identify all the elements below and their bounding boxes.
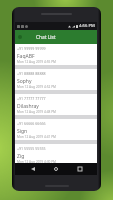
- staticText: Chat List: [36, 34, 56, 41]
- other: Menu: [18, 35, 22, 39]
- button[interactable]: +91 55555 55555: [15, 144, 97, 169]
- staticText: Mon 12 Aug 2019 4:48 PM: [17, 110, 56, 114]
- staticText: +91 55555 55555: [17, 146, 46, 151]
- button[interactable]: +91 88888 88888: [15, 69, 97, 94]
- button[interactable]: Recent apps: [74, 163, 86, 175]
- staticText: +91 99999 99999: [17, 46, 46, 51]
- button[interactable]: +91 77777 77777: [15, 94, 97, 119]
- button[interactable]: Home: [50, 163, 62, 175]
- staticText: Mon 12 Aug 2019 4:30 PM: [17, 160, 56, 164]
- staticText: Mon 12 Aug 2019 4:52 PM: [17, 85, 56, 89]
- staticText: Zig: [17, 153, 25, 160]
- staticText: FaqABF: [17, 53, 35, 60]
- button[interactable]: +91 99999 99999: [15, 44, 97, 69]
- staticText: Mon 12 Aug 2019 4:55 PM: [17, 60, 56, 64]
- button[interactable]: Menu: [15, 30, 97, 44]
- button[interactable]: +91 66666 66666: [15, 119, 97, 144]
- staticText: +91 66666 66666: [17, 121, 46, 126]
- staticText: Mon 12 Aug 2019 4:41 PM: [17, 135, 56, 139]
- staticText: Sign: [17, 128, 28, 135]
- button[interactable]: Back: [27, 163, 39, 175]
- staticText: Sophy: [17, 78, 32, 85]
- staticText: Dilashray: [17, 103, 39, 110]
- staticText: +91 77777 77777: [17, 96, 46, 101]
- staticText: 4:56 PM: [79, 23, 95, 29]
- staticText: +91 88888 88888: [17, 71, 46, 76]
